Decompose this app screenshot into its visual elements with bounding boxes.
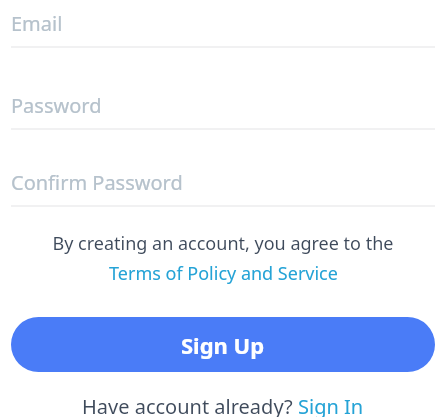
button[interactable]: Sign Up <box>11 317 435 372</box>
staticText: Have account already? <box>82 393 298 417</box>
button[interactable]: Sign In <box>298 393 364 417</box>
button[interactable]: Terms of Policy and Service <box>107 260 340 287</box>
button[interactable]: Password <box>11 82 435 130</box>
staticText: Confirm Password <box>11 169 183 196</box>
button[interactable]: Email <box>11 0 435 48</box>
staticText: Sign Up <box>181 330 265 360</box>
staticText: Email <box>11 10 63 37</box>
button[interactable]: Confirm Password <box>11 159 435 207</box>
staticText: Password <box>11 92 102 119</box>
staticText: By creating an account, you agree to the <box>11 231 435 256</box>
